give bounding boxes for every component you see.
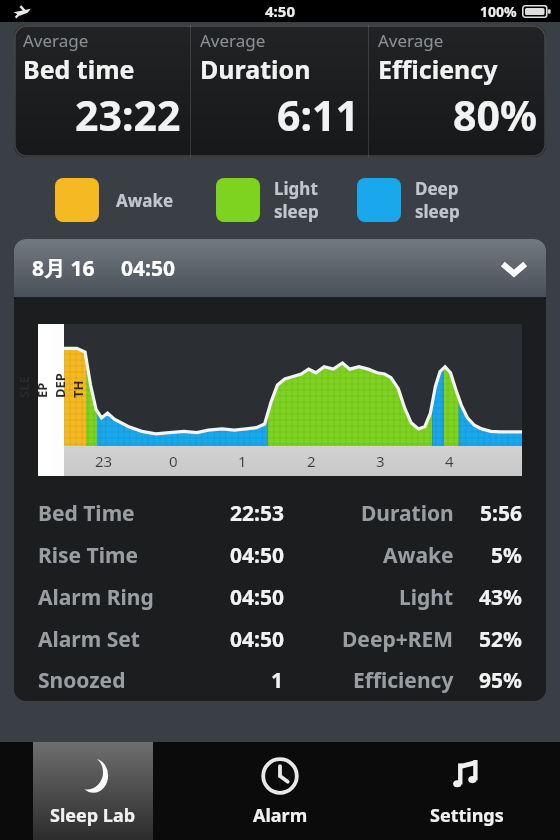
staticText: 1: [271, 666, 284, 695]
staticText: Average: [200, 29, 266, 52]
staticText: Duration: [200, 52, 311, 86]
button[interactable]: 8月 16: [14, 239, 546, 297]
staticText: Bed time: [23, 52, 135, 86]
staticText: 5%: [491, 541, 522, 570]
staticText: 04:50: [230, 583, 284, 612]
staticText: Deep+REM: [342, 625, 454, 654]
button[interactable]: Average: [14, 25, 190, 157]
staticText: 04:50: [121, 254, 175, 283]
staticText: 8月 16: [32, 254, 95, 283]
staticText: Alarm Set: [38, 625, 140, 654]
staticText: Average: [23, 29, 89, 52]
staticText: 80%: [453, 87, 537, 143]
button[interactable]: Sleep Lab: [33, 742, 153, 840]
staticText: Settings: [430, 803, 504, 828]
staticText: Light: [274, 177, 318, 200]
staticText: sleep: [415, 200, 460, 223]
staticText: 22:53: [230, 499, 284, 528]
staticText: Awake: [383, 541, 454, 570]
staticText: Deep: [415, 177, 459, 200]
other: Sleep Lab: [72, 755, 114, 797]
staticText: sleep: [274, 200, 319, 223]
button[interactable]: Alarm Set: [38, 618, 522, 660]
staticText: Snoozed: [38, 666, 126, 695]
staticText: Light: [399, 583, 454, 612]
staticText: 52%: [479, 625, 522, 654]
staticText: Awake: [116, 189, 174, 212]
staticText: 5:56: [480, 499, 522, 528]
other: Settings: [446, 755, 488, 797]
staticText: Alarm Ring: [38, 583, 154, 612]
staticText: 100%: [480, 2, 517, 21]
staticText: Average: [378, 29, 444, 52]
button[interactable]: Rise Time: [38, 534, 522, 576]
staticText: SLEEP DEPTH: [15, 372, 87, 398]
other: Alarm: [259, 755, 301, 797]
staticText: 1: [238, 451, 247, 471]
staticText: Efficiency: [378, 52, 498, 86]
staticText: Duration: [361, 499, 454, 528]
staticText: 3: [376, 451, 385, 471]
button[interactable]: Alarm Ring: [38, 576, 522, 618]
staticText: Sleep Lab: [50, 803, 136, 828]
staticText: Alarm: [253, 803, 308, 828]
staticText: Rise Time: [38, 541, 139, 570]
button[interactable]: Average: [191, 25, 368, 157]
staticText: 04:50: [230, 625, 284, 654]
button[interactable]: Bed Time: [38, 492, 522, 534]
staticText: 04:50: [230, 541, 284, 570]
staticText: Bed Time: [38, 499, 135, 528]
button[interactable]: Snoozed: [38, 660, 522, 701]
staticText: 43%: [479, 583, 522, 612]
staticText: 4:50: [265, 1, 295, 21]
button[interactable]: Settings: [407, 742, 527, 840]
staticText: Efficiency: [353, 666, 454, 695]
staticText: 23:22: [75, 87, 181, 143]
button[interactable]: Average: [369, 25, 546, 157]
other: Expand session: [500, 254, 528, 282]
staticText: 23: [95, 451, 113, 471]
staticText: 0: [169, 451, 178, 471]
staticText: 4: [445, 451, 454, 471]
staticText: 6:11: [277, 87, 359, 143]
staticText: 2: [307, 451, 316, 471]
button[interactable]: Alarm: [220, 742, 340, 840]
staticText: 95%: [479, 666, 522, 695]
